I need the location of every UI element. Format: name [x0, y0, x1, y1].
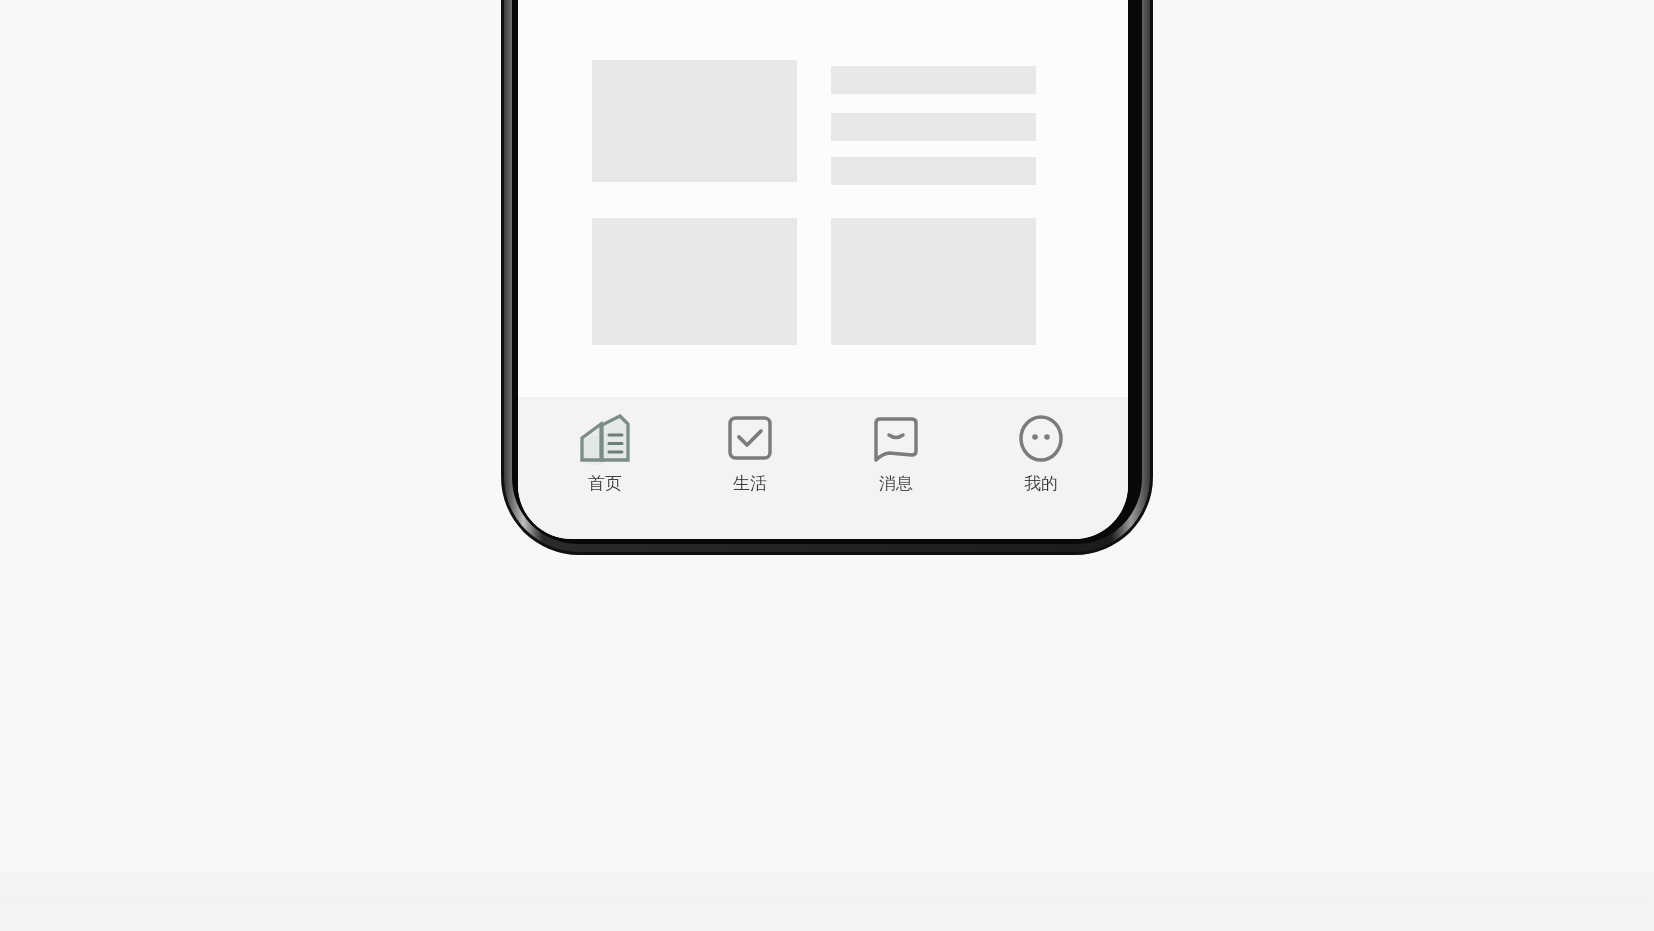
- staticText: 消息: [879, 473, 913, 494]
- button[interactable]: 生活: [692, 397, 808, 539]
- button[interactable]: 我的: [983, 397, 1099, 539]
- staticText: 生活: [733, 473, 767, 494]
- button[interactable]: 消息: [838, 397, 954, 539]
- other: 生活: [720, 409, 780, 469]
- other: 我的: [1011, 409, 1071, 469]
- staticText: 我的: [1024, 473, 1058, 494]
- other: 首页: [575, 409, 635, 469]
- staticText: 首页: [588, 473, 622, 494]
- button[interactable]: 首页: [547, 397, 663, 539]
- other: 消息: [866, 409, 926, 469]
